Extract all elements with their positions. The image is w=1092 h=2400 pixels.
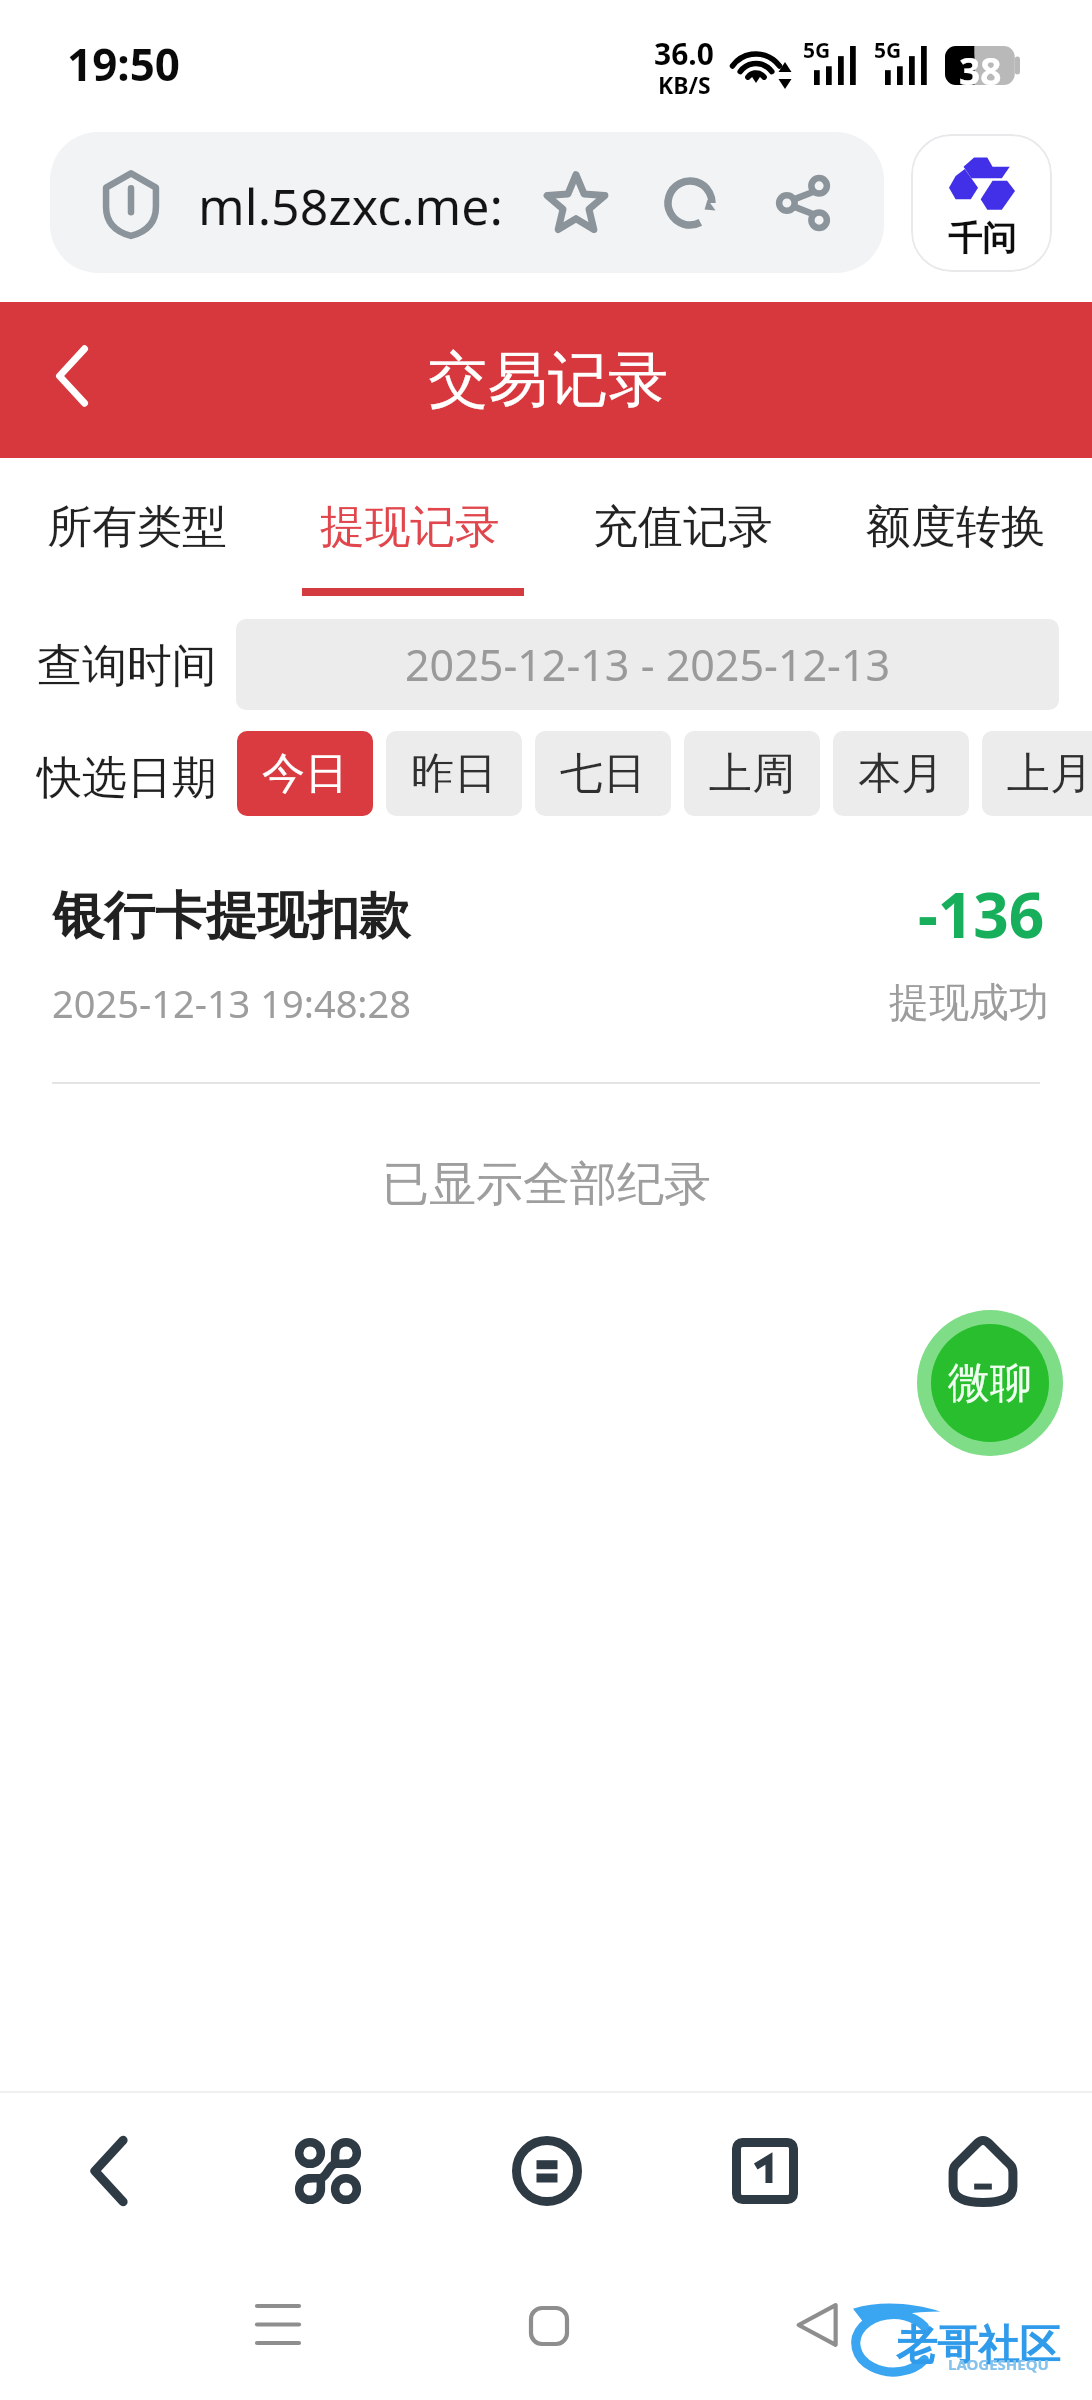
button[interactable]: Bookmark — [542, 170, 610, 236]
staticText: 银行卡提现扣款 — [53, 884, 410, 948]
staticText: 19:50 — [67, 34, 181, 94]
staticText: 本月 — [858, 747, 944, 801]
button[interactable]: Home — [529, 2306, 569, 2346]
staticText: 查询时间 — [37, 638, 217, 695]
staticText: 额度转换 — [866, 499, 1046, 556]
staticText: 上月 — [1007, 747, 1092, 801]
button[interactable]: Reload — [658, 172, 722, 234]
button[interactable]: Apps — [297, 2140, 359, 2202]
staticText: 千问 — [948, 217, 1016, 260]
staticText: 昨日 — [411, 747, 497, 801]
staticText: 5G — [803, 36, 831, 65]
staticText: 提现成功 — [889, 977, 1049, 1027]
button[interactable]: 今日 — [237, 731, 373, 816]
button[interactable]: 上周 — [684, 731, 820, 816]
button[interactable]: Menu — [512, 2136, 582, 2206]
button[interactable]: 充值记录 — [546, 468, 819, 586]
staticText: 今日 — [262, 747, 348, 801]
staticText: 七日 — [560, 747, 646, 801]
button[interactable]: Back — [38, 342, 106, 410]
staticText: LAOGESHEQU — [948, 2354, 1049, 2374]
button[interactable]: Share — [772, 170, 834, 236]
button[interactable]: 千问 — [911, 134, 1052, 272]
staticText: -136 — [918, 872, 1045, 956]
staticText: 老哥社区 — [896, 2320, 1060, 2372]
button[interactable]: 微聊 — [917, 1310, 1063, 1456]
staticText: 5G — [874, 36, 902, 65]
button[interactable]: 七日 — [535, 731, 671, 816]
button[interactable]: 本月 — [833, 731, 969, 816]
staticText: KB/S — [658, 69, 711, 100]
staticText: 提现记录 — [320, 499, 500, 556]
staticText: 充值记录 — [593, 499, 773, 556]
button[interactable] — [50, 132, 884, 273]
staticText: 2025-12-13 19:48:28 — [52, 977, 412, 1029]
button[interactable]: 所有类型 — [0, 468, 273, 586]
button[interactable]: 昨日 — [386, 731, 522, 816]
button[interactable]: Back — [797, 2303, 839, 2347]
staticText: 36.0 — [654, 33, 714, 74]
button[interactable]: 2025-12-13 - 2025-12-13 — [236, 619, 1059, 710]
staticText: 上周 — [709, 747, 795, 801]
button[interactable]: 额度转换 — [819, 468, 1092, 586]
staticText: 微聊 — [948, 1357, 1032, 1410]
button[interactable]: Tabs — [732, 2138, 798, 2204]
button[interactable]: 提现记录 — [273, 468, 546, 586]
staticText: ml.58zxc.me: — [198, 172, 503, 240]
staticText: 所有类型 — [47, 499, 227, 556]
staticText: 交易记录 — [428, 342, 668, 418]
staticText: 快选日期 — [37, 750, 217, 807]
staticText: 38 — [959, 45, 1002, 95]
staticText: 2025-12-13 - 2025-12-13 — [405, 635, 891, 694]
button[interactable]: Recents — [257, 2304, 299, 2347]
staticText: 已显示全部纪录 — [382, 1155, 711, 1214]
button[interactable]: Home — [949, 2136, 1017, 2206]
button[interactable]: Back — [75, 2139, 143, 2203]
button[interactable]: 上月 — [982, 731, 1092, 816]
